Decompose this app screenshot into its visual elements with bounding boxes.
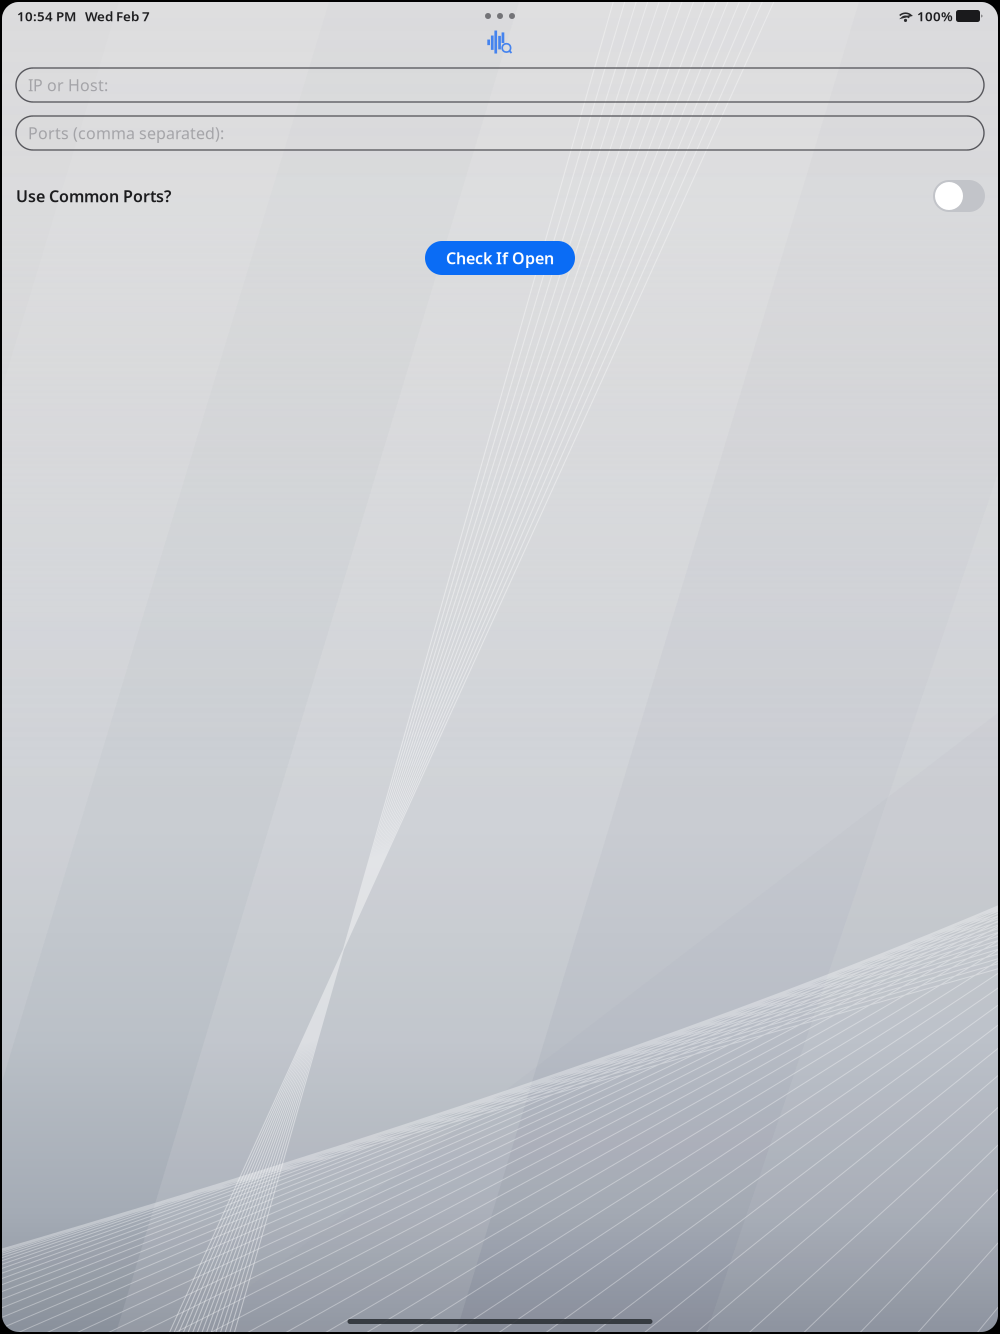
button[interactable]: Ports (comma separated): [16, 116, 984, 150]
button[interactable]: Check If Open [425, 241, 575, 275]
button[interactable]: IP or Host: [16, 68, 984, 102]
staticText: Wed Feb 7 [76, 7, 150, 25]
staticText: 10:54 PM [17, 7, 76, 25]
staticText: 100% [914, 7, 956, 25]
staticText: Use Common Ports? [16, 185, 171, 207]
staticText: Ports (comma separated): [28, 122, 224, 144]
staticText: Check If Open [446, 247, 554, 269]
staticText: IP or Host: [28, 74, 108, 96]
button[interactable]: Use Common Ports [933, 180, 985, 212]
